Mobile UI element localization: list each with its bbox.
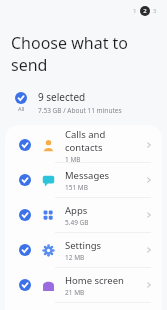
button[interactable]: Messages <box>5 163 162 197</box>
staticText: 7.53 GB / About 11 minutes <box>38 106 122 115</box>
staticText: 3 <box>153 7 157 15</box>
staticText: All <box>18 105 25 112</box>
staticText: Choose what to send <box>11 32 167 76</box>
staticText: 1 <box>133 7 137 15</box>
button[interactable]: Calls and contacts <box>5 128 162 162</box>
staticText: 5.49 GB <box>65 218 89 227</box>
button[interactable]: All <box>14 90 167 115</box>
staticText: Messages <box>65 169 110 182</box>
staticText: 2 <box>143 7 147 15</box>
staticText: 151 MB <box>65 183 88 192</box>
button[interactable]: Settings <box>5 233 162 267</box>
staticText: 12 MB <box>65 253 85 262</box>
staticText: 9 selected <box>38 90 86 104</box>
staticText: Apps <box>65 204 88 217</box>
staticText: 21 MB <box>65 288 85 297</box>
staticText: Home screen <box>65 274 124 287</box>
staticText: Settings <box>65 239 102 252</box>
button[interactable]: Home screen <box>5 268 162 302</box>
staticText: 1 MB <box>65 155 81 162</box>
button[interactable]: Apps <box>5 198 162 232</box>
staticText: Calls and contacts <box>65 128 145 154</box>
